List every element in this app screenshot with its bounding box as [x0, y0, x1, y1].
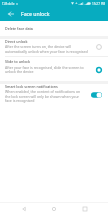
staticText: T-Mobile — [2, 2, 15, 6]
staticText: After your face is recognised, slide the… — [5, 65, 84, 70]
button[interactable]: Smart lock screen notifications — [0, 84, 108, 105]
staticText: the lock screen will only be shown when … — [5, 94, 80, 99]
button[interactable]: Selected — [94, 65, 104, 75]
staticText: Slide to unlock — [5, 59, 31, 64]
staticText: Face unlock — [21, 10, 50, 17]
button[interactable]: Toggle smart lock screen notifications — [88, 90, 104, 100]
button[interactable]: Back — [17, 202, 31, 216]
staticText: After the screen turns on, the device wi… — [5, 44, 71, 49]
button[interactable]: Home — [47, 202, 61, 216]
staticText: Smart lock screen notifications — [5, 84, 58, 89]
button[interactable]: Recents — [78, 202, 92, 216]
staticText: unlock the device — [5, 69, 34, 74]
button[interactable]: Delete face data — [0, 21, 108, 36]
button[interactable]: Back — [4, 7, 18, 21]
staticText: 15:27 PM — [92, 2, 106, 6]
staticText: automatically unlock when your face is r… — [5, 49, 88, 54]
button[interactable]: Not selected — [94, 42, 104, 52]
staticText: Delete face data — [5, 26, 33, 31]
staticText: face is recognised — [5, 98, 35, 103]
button[interactable]: Slide to unlock — [0, 57, 108, 76]
staticText: When enabled, the content of notificatio… — [5, 89, 81, 94]
staticText: Direct unlock — [5, 39, 28, 44]
button[interactable]: Direct unlock — [0, 39, 108, 56]
